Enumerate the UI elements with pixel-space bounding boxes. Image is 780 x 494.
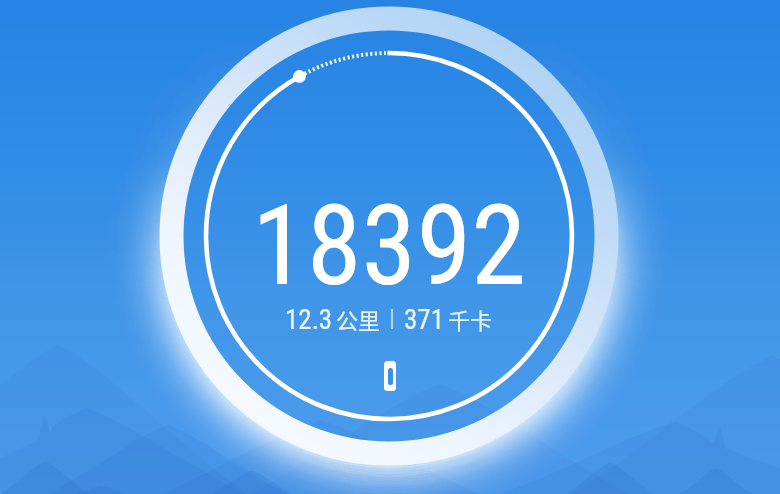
- staticText: 371: [404, 304, 444, 334]
- staticText: 千卡: [448, 303, 493, 333]
- staticText: 公里: [336, 303, 381, 333]
- staticText: 18392: [252, 181, 526, 291]
- button[interactable]: Data source: band: [384, 361, 396, 391]
- staticText: 12.3: [285, 304, 333, 334]
